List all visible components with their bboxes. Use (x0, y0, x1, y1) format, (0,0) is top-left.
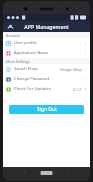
button[interactable]: Change Password (3, 74, 90, 84)
button[interactable]: Menu (5, 22, 15, 32)
staticText: More Settings (6, 59, 30, 64)
staticText: Switch Shop (14, 66, 60, 72)
staticText: Google Shop (60, 67, 82, 72)
staticText: 3.1.2 (73, 87, 82, 92)
button[interactable]: Switch Shop (3, 64, 90, 74)
button[interactable]: Application News (3, 48, 90, 58)
button[interactable]: Check For Updates (3, 84, 90, 94)
staticText: Application News (14, 50, 84, 56)
button[interactable]: Sign Out (9, 105, 84, 114)
staticText: User profile (14, 40, 84, 46)
staticText: Check For Updates (14, 86, 73, 92)
staticText: Sign Out (37, 106, 57, 113)
staticText: Account (6, 33, 20, 38)
staticText: APP Management (24, 23, 69, 30)
staticText: Change Password (14, 76, 84, 82)
button[interactable]: User profile (3, 38, 90, 48)
